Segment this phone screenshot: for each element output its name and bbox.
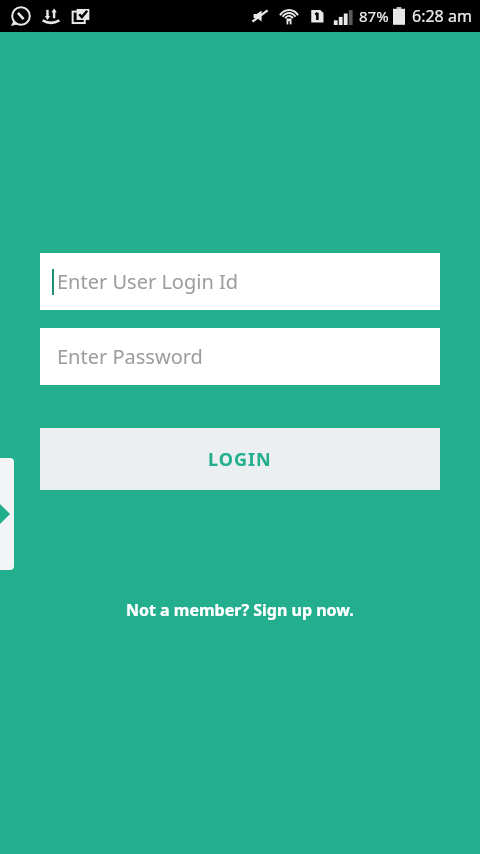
staticText: Enter User Login Id	[57, 268, 239, 295]
staticText: Not a member? Sign up now.	[126, 599, 354, 621]
staticText: LOGIN	[208, 447, 272, 472]
button[interactable]: Enter User Login Id	[40, 253, 440, 310]
staticText: 6:28 am	[412, 5, 472, 27]
button[interactable]: LOGIN	[40, 428, 440, 490]
button[interactable]: Not a member? Sign up now.	[0, 595, 480, 625]
button[interactable]: Enter Password	[40, 328, 440, 385]
staticText: Enter Password	[57, 343, 203, 370]
staticText: 87%	[359, 6, 389, 26]
button[interactable]: Open navigation drawer	[0, 458, 14, 570]
